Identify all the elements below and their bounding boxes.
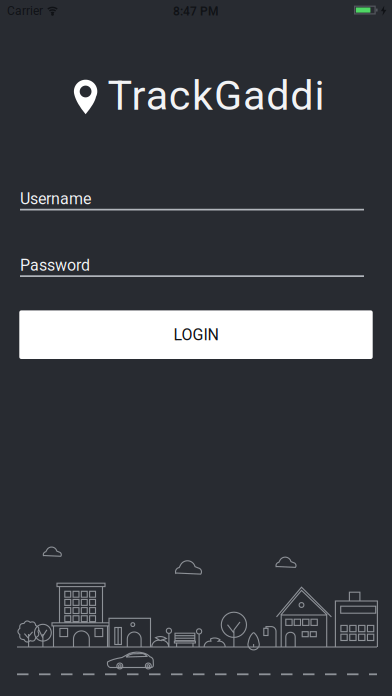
staticText: Username	[20, 190, 91, 208]
staticText: 8:47 PM	[173, 4, 219, 18]
staticText: Password	[20, 256, 90, 274]
button[interactable]: LOGIN	[19, 310, 373, 359]
button[interactable]: Password	[20, 256, 364, 277]
staticText: TrackGaddi	[107, 72, 324, 119]
staticText: Carrier	[7, 4, 43, 18]
staticText: LOGIN	[173, 326, 218, 344]
button[interactable]: Username	[20, 190, 364, 210]
